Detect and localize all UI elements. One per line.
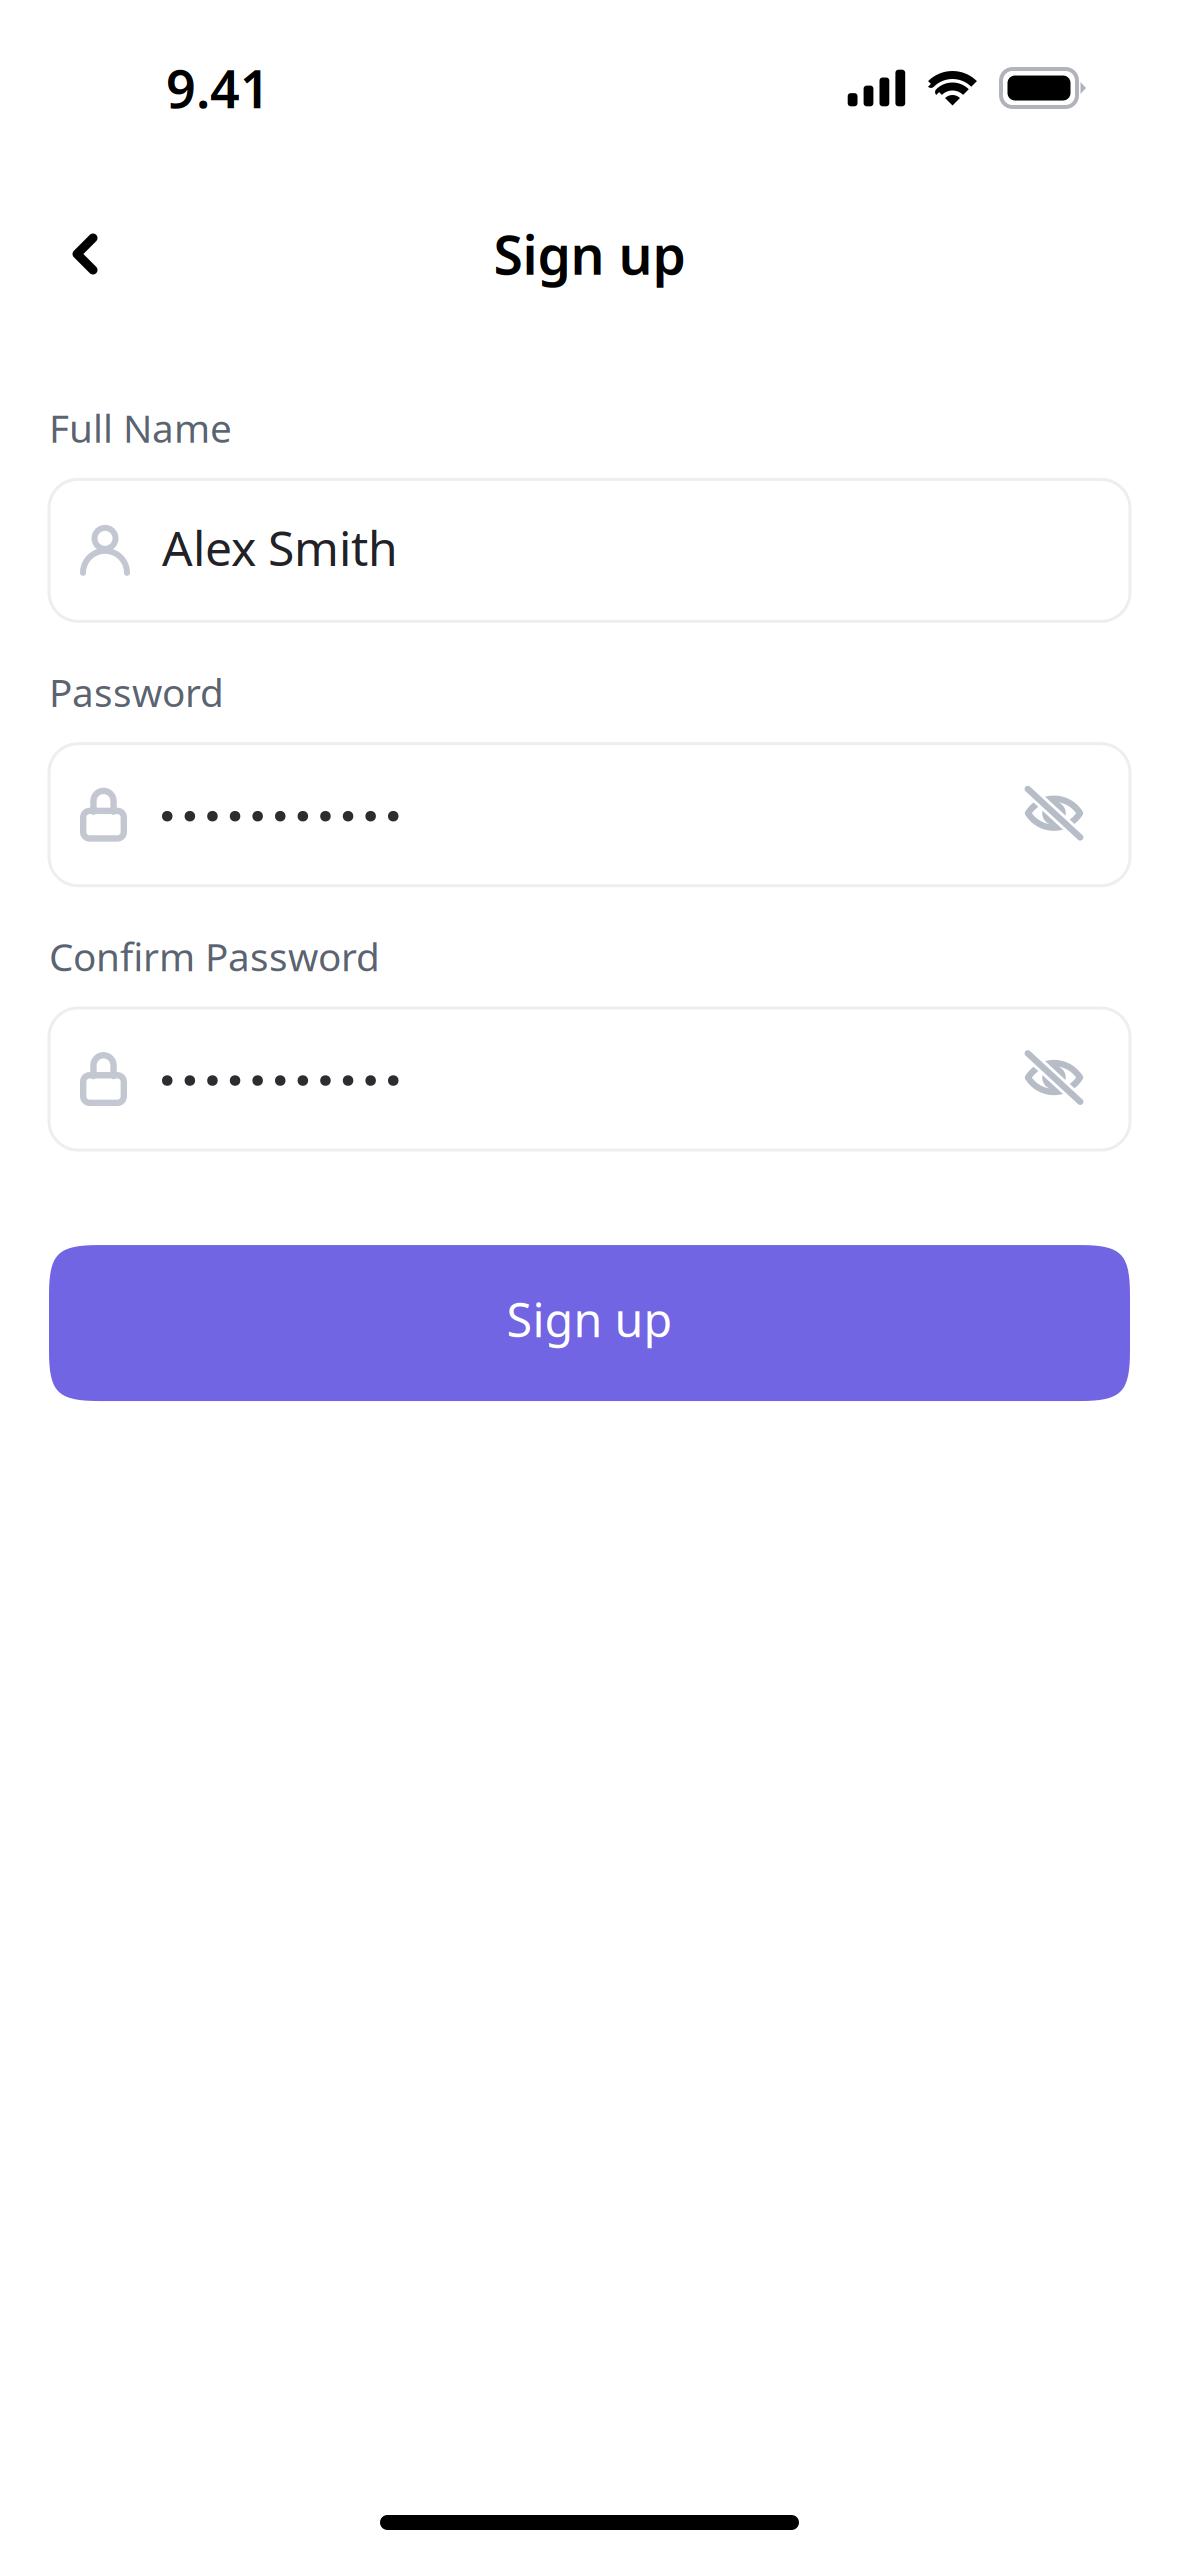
button[interactable]: Hide confirm password — [1016, 1041, 1092, 1117]
button[interactable]: Back — [49, 218, 121, 290]
staticText: Password — [49, 666, 224, 718]
staticText: Sign up — [493, 219, 685, 289]
staticText: 9.41 — [166, 53, 270, 123]
button[interactable]: Sign up — [49, 1245, 1130, 1401]
staticText: Full Name — [49, 402, 232, 453]
staticText: Alex Smith — [162, 515, 398, 579]
button[interactable]: Show password — [1016, 777, 1092, 853]
staticText: Confirm Password — [49, 931, 380, 982]
staticText: Sign up — [506, 1288, 672, 1350]
